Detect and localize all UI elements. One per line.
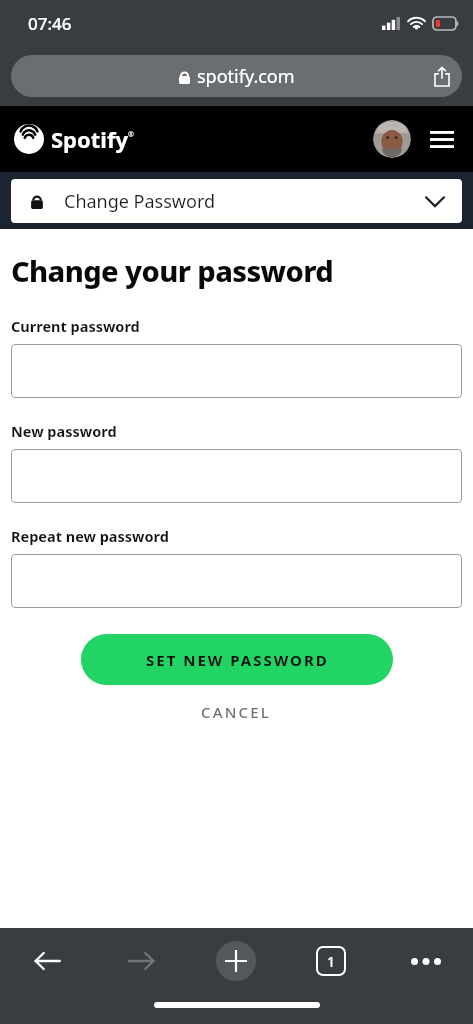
staticText: Repeat new password <box>11 526 169 546</box>
staticText: New password <box>11 421 117 441</box>
button[interactable]: SET NEW PASSWORD <box>81 634 393 685</box>
button[interactable] <box>11 344 462 398</box>
staticText: Current password <box>11 316 140 336</box>
staticText: 07:46 <box>28 12 72 35</box>
button[interactable] <box>11 554 462 608</box>
button[interactable]: New tab <box>188 928 283 994</box>
button[interactable]: Account <box>373 120 411 158</box>
button[interactable]: Share <box>422 56 462 96</box>
staticText: Spotify <box>51 124 128 154</box>
button[interactable]: CANCEL <box>183 695 290 729</box>
button[interactable]: Spotify <box>14 124 134 154</box>
button[interactable] <box>11 449 462 503</box>
button[interactable]: More options <box>378 928 473 994</box>
staticText: 1 <box>327 952 336 971</box>
button[interactable]: Back <box>0 928 94 994</box>
staticText: CANCEL <box>201 702 272 722</box>
button[interactable]: spotify.com <box>11 55 462 97</box>
staticText: SET NEW PASSWORD <box>146 650 329 670</box>
staticText: spotify.com <box>197 64 295 89</box>
button[interactable]: Change Password <box>11 179 462 223</box>
staticText: Change Password <box>64 189 216 214</box>
button[interactable]: Forward <box>94 928 188 994</box>
staticText: ® <box>128 130 134 140</box>
staticText: Change your password <box>11 251 334 290</box>
button[interactable]: Menu <box>425 122 459 156</box>
button[interactable]: Tabs <box>283 928 378 994</box>
